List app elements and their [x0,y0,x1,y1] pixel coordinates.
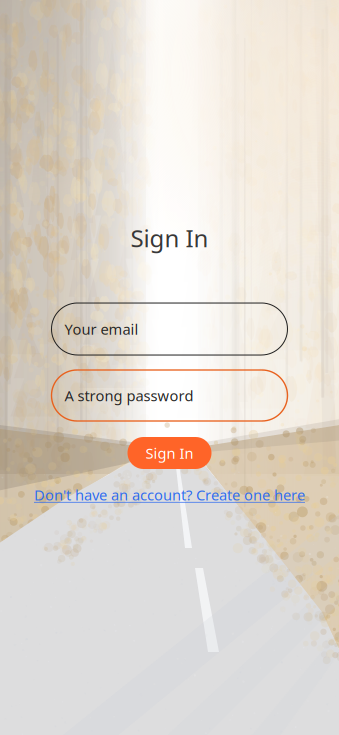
button[interactable]: Sign In [127,437,211,469]
staticText: Don't have an account? Create one here [34,485,305,504]
staticText: Sign In [130,222,208,254]
staticText: A strong password [64,386,193,405]
button[interactable]: A strong password [51,370,287,421]
button[interactable]: Don't have an account? Create one here [34,485,305,504]
staticText: Sign In [145,443,193,463]
staticText: Your email [64,319,138,339]
button[interactable]: Your email [51,303,287,355]
